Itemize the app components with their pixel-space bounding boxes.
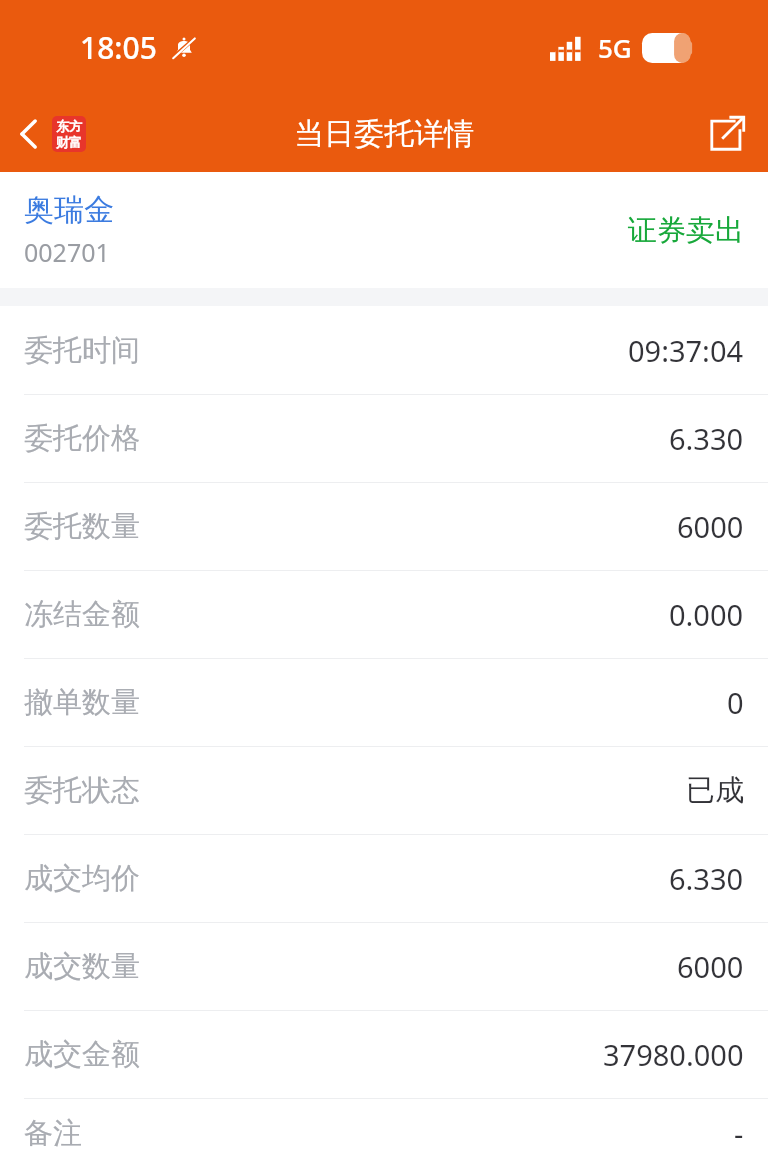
staticText: 委托状态 <box>24 772 140 809</box>
staticText: 5G <box>598 30 632 65</box>
button[interactable]: 委托价格 <box>0 394 768 482</box>
button[interactable]: Share <box>686 101 768 167</box>
staticText: 撤单数量 <box>24 684 140 721</box>
button[interactable]: 成交金额 <box>0 1010 768 1098</box>
staticText: 002701 <box>24 235 110 269</box>
staticText: 37980.000 <box>603 1035 744 1074</box>
staticText: 6.330 <box>669 859 744 898</box>
button[interactable]: 成交数量 <box>0 922 768 1010</box>
button[interactable]: 撤单数量 <box>0 658 768 746</box>
staticText: 东方 <box>56 118 82 134</box>
staticText: 冻结金额 <box>24 596 140 633</box>
staticText: 委托价格 <box>24 420 140 457</box>
button[interactable]: 冻结金额 <box>0 570 768 658</box>
button[interactable]: 成交均价 <box>0 834 768 922</box>
staticText: 成交均价 <box>24 860 140 897</box>
staticText: 6000 <box>677 507 744 546</box>
staticText: 0.000 <box>669 595 744 634</box>
staticText: 备注 <box>24 1115 82 1152</box>
staticText: 委托时间 <box>24 332 140 369</box>
button[interactable]: 备注 <box>0 1098 768 1167</box>
button[interactable]: 奥瑞金 <box>0 172 768 288</box>
staticText: 18:05 <box>80 27 157 68</box>
staticText: 财富 <box>56 134 82 150</box>
staticText: 奥瑞金 <box>24 191 114 229</box>
staticText: 证券卖出 <box>628 212 744 249</box>
staticText: 0 <box>727 683 744 722</box>
button[interactable]: Back <box>0 110 94 158</box>
staticText: 委托数量 <box>24 508 140 545</box>
staticText: 09:37:04 <box>628 331 744 370</box>
staticText: 6000 <box>677 947 744 986</box>
button[interactable]: 委托数量 <box>0 482 768 570</box>
button[interactable]: 委托时间 <box>0 306 768 394</box>
staticText: 当日委托详情 <box>294 115 474 153</box>
staticText: 已成 <box>686 772 744 809</box>
staticText: 成交数量 <box>24 948 140 985</box>
button[interactable]: 委托状态 <box>0 746 768 834</box>
staticText: - <box>734 1114 744 1153</box>
staticText: 6.330 <box>669 419 744 458</box>
staticText: 成交金额 <box>24 1036 140 1073</box>
